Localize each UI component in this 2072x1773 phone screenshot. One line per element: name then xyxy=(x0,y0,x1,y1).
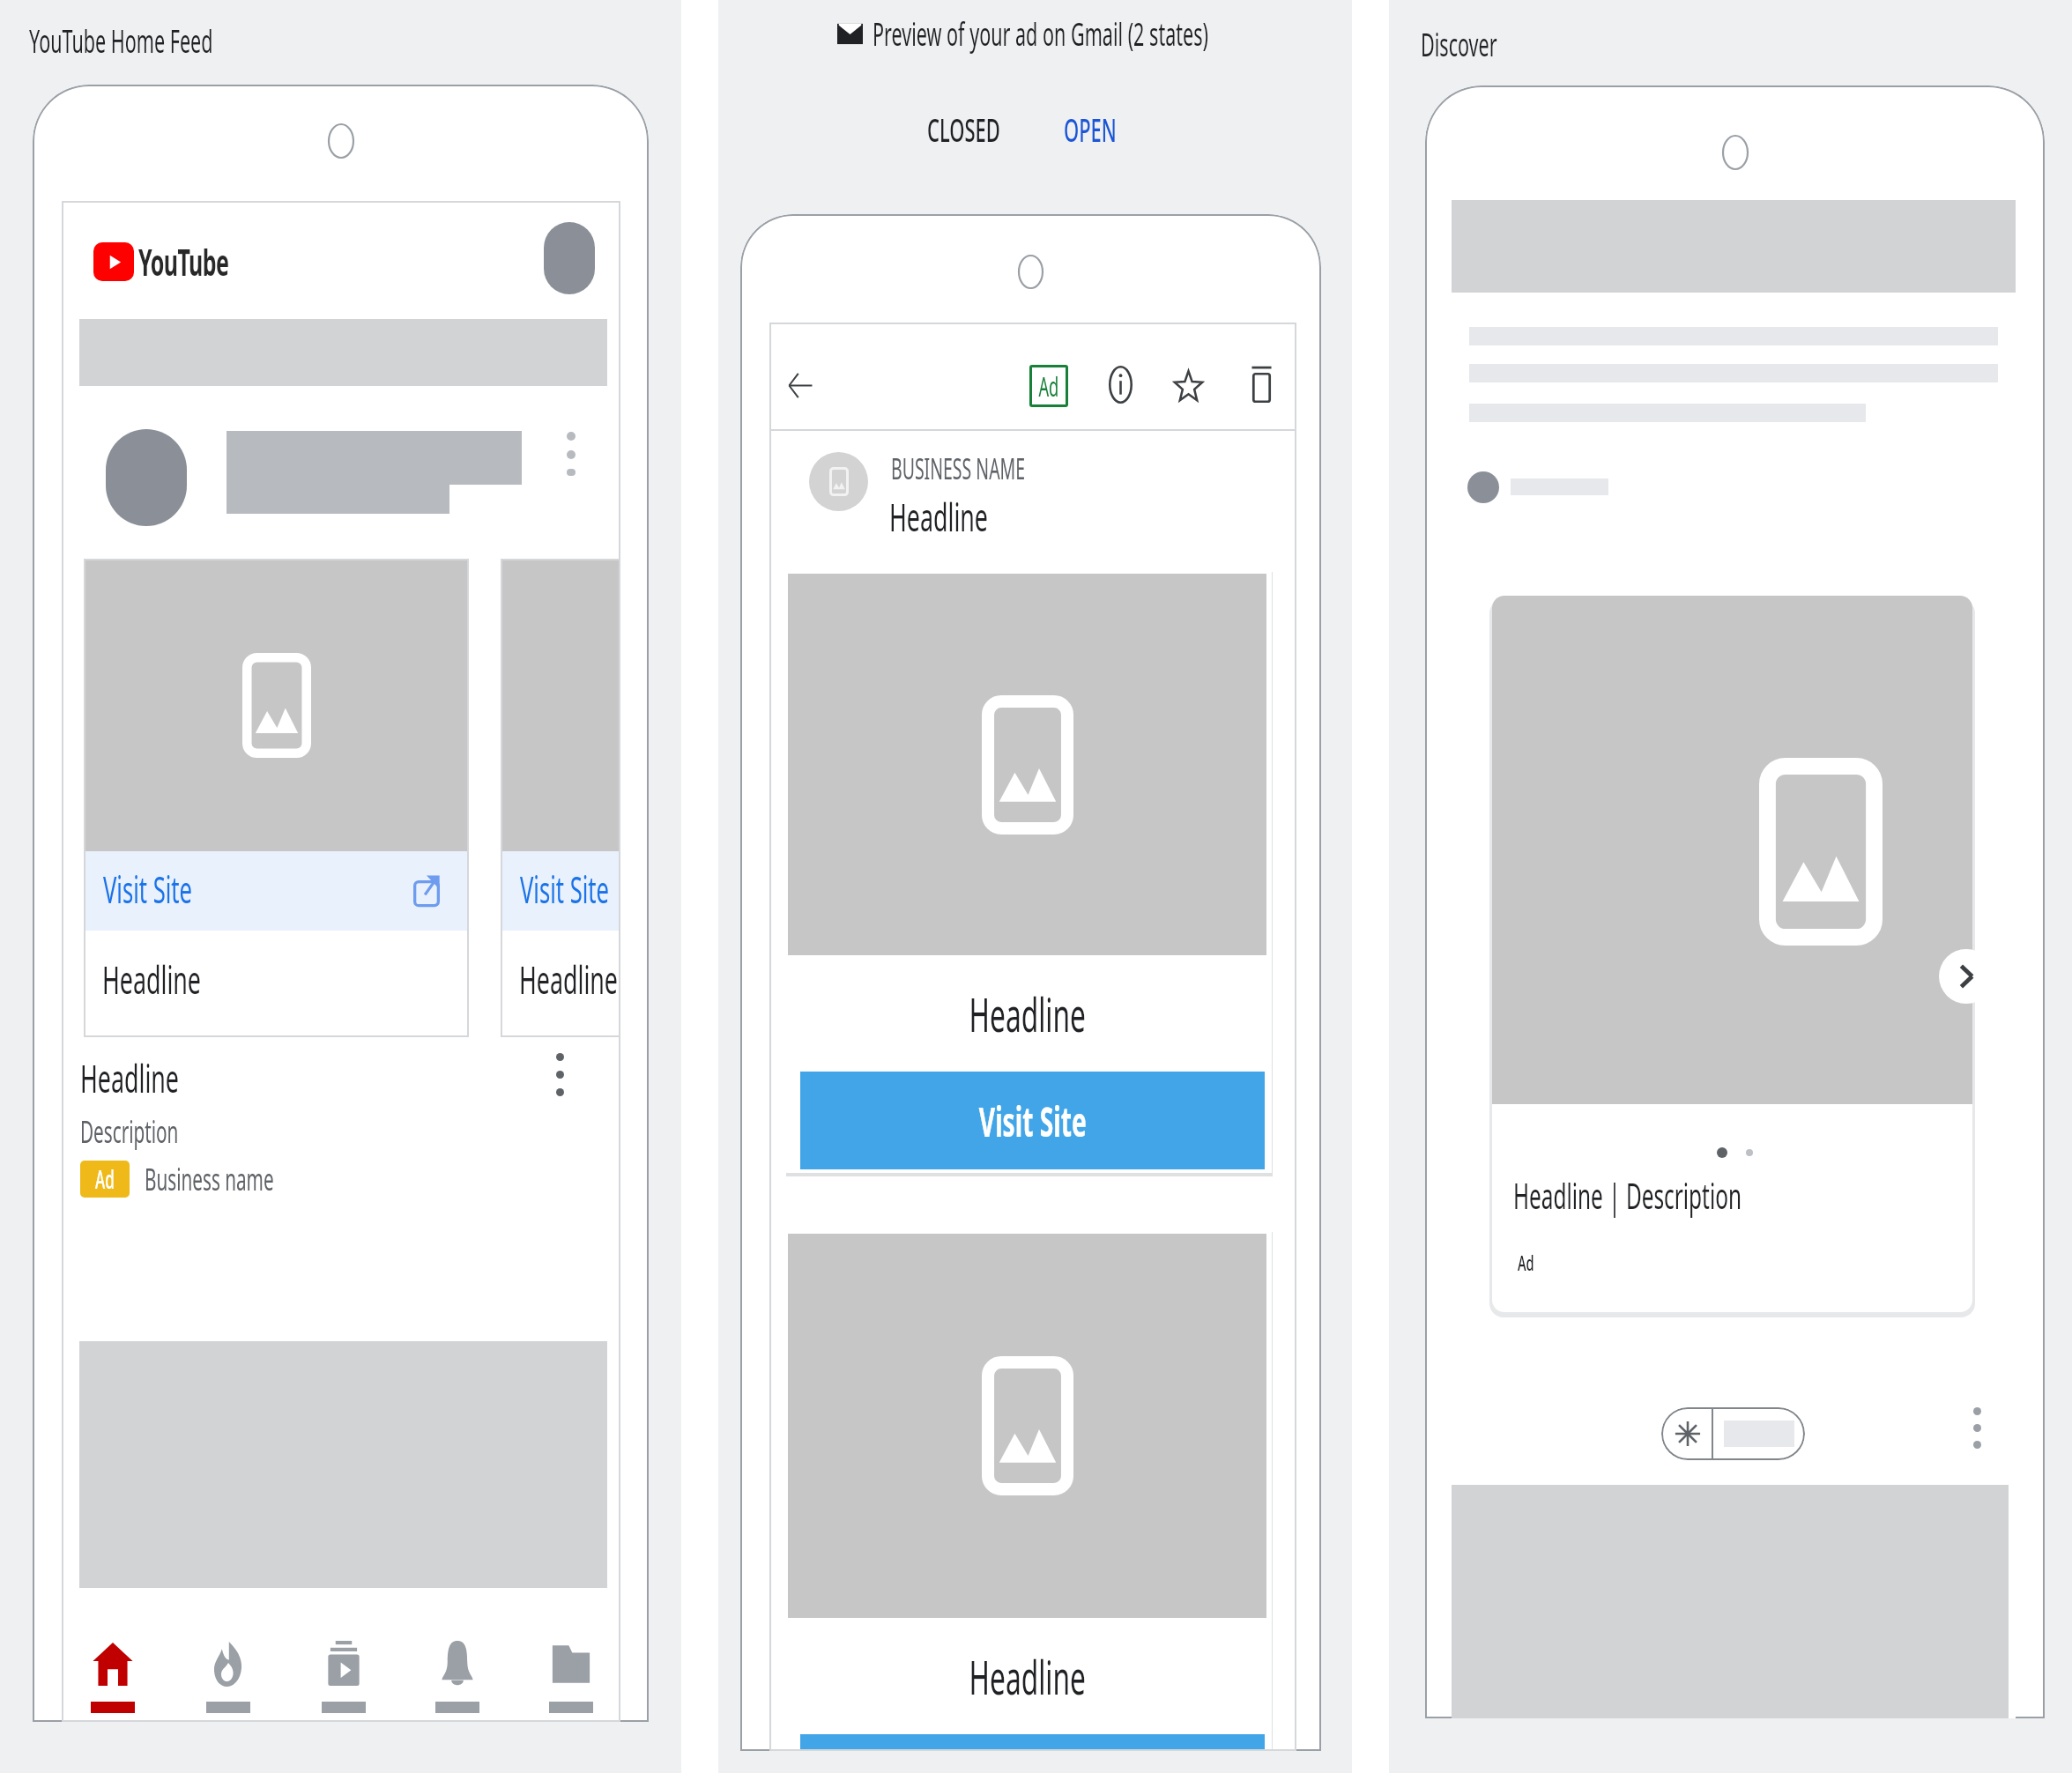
button[interactable]: Back xyxy=(788,372,813,399)
staticText: Ad xyxy=(95,1162,114,1196)
button[interactable]: Star xyxy=(1173,368,1204,403)
staticText: Headline xyxy=(102,953,201,1005)
button[interactable]: Navigation tab xyxy=(409,1628,506,1721)
button[interactable]: Visit Site xyxy=(84,851,469,931)
button[interactable]: More options xyxy=(548,1052,571,1096)
staticText: Business name xyxy=(145,1159,274,1199)
button[interactable]: Visit Site xyxy=(800,1734,1265,1751)
button[interactable]: Navigation tab xyxy=(295,1628,392,1721)
button[interactable]: Info xyxy=(1109,366,1133,404)
staticText: Headline xyxy=(80,1051,179,1104)
button[interactable]: Navigation tab xyxy=(180,1628,277,1721)
staticText: YouTube Home Feed xyxy=(29,19,213,63)
button[interactable]: Headline | Description xyxy=(1492,596,1972,1312)
button[interactable]: CLOSED xyxy=(920,105,1054,155)
staticText: Preview of your ad on Gmail (2 states) xyxy=(873,12,1209,56)
staticText: Headline xyxy=(889,490,988,543)
button[interactable]: Visit Site xyxy=(800,1072,1265,1169)
staticText: Visit Site xyxy=(103,864,192,914)
button[interactable]: Search xyxy=(1661,1407,1805,1460)
button[interactable]: OPEN xyxy=(1057,105,1158,155)
staticText: Description xyxy=(80,1111,178,1152)
staticText: Visit Site xyxy=(520,864,609,914)
staticText: Visit Site xyxy=(979,1093,1087,1149)
staticText: YouTube xyxy=(138,237,229,286)
staticText: Headline | Description xyxy=(1513,1171,1742,1219)
staticText: Headline xyxy=(969,983,1086,1045)
staticText: OPEN xyxy=(1064,108,1117,152)
button[interactable]: Navigation tab xyxy=(64,1628,161,1721)
button[interactable]: Navigation tab xyxy=(523,1628,620,1721)
button[interactable]: Visit Site xyxy=(501,851,620,931)
staticText: Discover xyxy=(1421,23,1497,66)
button[interactable]: Visit Site xyxy=(84,559,469,1037)
button[interactable]: Account xyxy=(544,222,595,294)
button[interactable]: Visit Site xyxy=(501,559,620,1037)
staticText: Headline xyxy=(519,953,618,1005)
button[interactable]: Ad information xyxy=(1029,365,1068,407)
staticText: Headline xyxy=(969,1645,1086,1708)
button[interactable]: Archive xyxy=(1251,366,1272,403)
staticText: Ad xyxy=(1518,1248,1534,1277)
button[interactable]: More options xyxy=(1965,1406,1988,1449)
staticText: BUSINESS NAME xyxy=(891,449,1025,488)
button[interactable]: Next xyxy=(1939,949,1994,1004)
button[interactable]: More options xyxy=(560,432,583,476)
staticText: CLOSED xyxy=(927,108,1000,152)
staticText: Ad xyxy=(1039,368,1059,404)
